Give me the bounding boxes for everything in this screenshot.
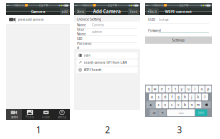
staticText: 3 xyxy=(177,124,182,136)
button[interactable]: press add camera xyxy=(6,15,70,24)
staticText: h xyxy=(184,95,186,99)
button[interactable]: d xyxy=(162,93,168,100)
staticText: f xyxy=(171,95,172,99)
button[interactable]: t xyxy=(172,86,178,92)
button[interactable]: Photo xyxy=(22,109,38,120)
staticText: Photo xyxy=(25,116,34,119)
button[interactable]: i xyxy=(192,86,198,92)
button[interactable]: h xyxy=(182,93,188,100)
button[interactable]: p xyxy=(205,86,211,92)
staticText: Join xyxy=(198,111,204,114)
button[interactable]: Search camera (IP) from LAN xyxy=(76,59,137,66)
button[interactable]: v xyxy=(175,101,181,108)
button[interactable]: l xyxy=(202,93,208,100)
button[interactable]: Back xyxy=(146,8,159,14)
staticText: WIFI Search xyxy=(83,68,101,72)
button[interactable]: m xyxy=(195,101,201,108)
button[interactable]: Save xyxy=(128,8,139,14)
staticText: s xyxy=(158,95,160,99)
staticText: Done xyxy=(76,9,84,14)
staticText: r xyxy=(168,87,169,91)
staticText: 3:52 PM xyxy=(39,4,48,7)
button[interactable]: WIFI Search xyxy=(76,67,137,73)
button[interactable]: add xyxy=(60,8,69,14)
staticText: q xyxy=(148,87,150,91)
button[interactable]: s xyxy=(156,93,162,100)
button[interactable]: space xyxy=(167,109,195,116)
button[interactable]: e xyxy=(159,86,165,92)
button[interactable]: o xyxy=(199,86,205,92)
button[interactable]: y xyxy=(179,86,185,92)
staticText: Scan xyxy=(83,53,90,57)
staticText: SSID xyxy=(148,18,155,22)
staticText: admin xyxy=(92,30,102,34)
staticText: T-Mobile xyxy=(13,4,24,7)
button[interactable]: Join xyxy=(195,109,207,116)
button[interactable]: c xyxy=(169,101,175,108)
staticText: 📶 xyxy=(25,4,28,7)
staticText: y xyxy=(181,87,183,91)
button[interactable]: Scan xyxy=(76,52,137,58)
staticText: Video xyxy=(42,116,50,119)
staticText: j xyxy=(191,95,192,99)
button[interactable]: Video xyxy=(38,109,54,120)
staticText: t xyxy=(175,87,176,91)
staticText: Back xyxy=(149,9,157,14)
staticText: 3:52 PM xyxy=(179,4,188,7)
staticText: k xyxy=(197,95,199,99)
staticText: camera xyxy=(10,116,17,119)
staticText: i xyxy=(194,87,195,91)
button[interactable]: ⊕ xyxy=(158,109,166,116)
staticText: x xyxy=(164,103,166,107)
staticText: z xyxy=(158,103,160,107)
button[interactable]: b xyxy=(182,101,188,108)
staticText: Password xyxy=(77,41,92,50)
staticText: Password xyxy=(148,29,161,33)
staticText: Camera xyxy=(92,23,104,27)
button[interactable]: a xyxy=(149,93,155,100)
staticText: ⊕ xyxy=(161,111,163,114)
staticText: 📶 xyxy=(93,4,96,7)
button[interactable]: f xyxy=(169,93,175,100)
button[interactable]: Settings xyxy=(145,36,212,44)
staticText: a xyxy=(151,95,153,99)
staticText: linksys xyxy=(159,18,168,22)
staticText: Add Camera xyxy=(93,8,121,15)
button[interactable]: Shift xyxy=(146,101,155,108)
button[interactable]: x xyxy=(162,101,168,108)
staticText: 123 xyxy=(152,111,155,114)
button[interactable]: n xyxy=(189,101,195,108)
button[interactable]: r xyxy=(166,86,172,92)
button[interactable]: w xyxy=(152,86,158,92)
button[interactable]: Done xyxy=(75,8,86,14)
button[interactable]: Setting xyxy=(54,109,70,120)
staticText: T-Mobile xyxy=(152,4,163,7)
staticText: T-Mobile xyxy=(81,4,92,7)
button[interactable]: u xyxy=(185,86,191,92)
staticText: m xyxy=(197,103,200,107)
staticText: 3:52 PM xyxy=(108,4,117,7)
staticText: add xyxy=(61,9,67,14)
staticText: User Name xyxy=(77,27,86,36)
staticText: u xyxy=(187,87,189,91)
button[interactable]: camera xyxy=(6,109,22,120)
staticText: Camera xyxy=(31,9,45,14)
button[interactable]: g xyxy=(175,93,181,100)
button[interactable]: z xyxy=(156,101,162,108)
staticText: g xyxy=(177,95,179,99)
button[interactable]: Delete xyxy=(202,101,211,108)
staticText: 📶 xyxy=(164,4,167,7)
staticText: WIFI connect xyxy=(165,9,192,14)
button[interactable]: 123 xyxy=(150,109,158,116)
staticText: 1 xyxy=(36,124,41,136)
staticText: Save xyxy=(129,9,137,14)
staticText: l xyxy=(204,95,205,99)
button[interactable]: q xyxy=(146,86,152,92)
staticText: space xyxy=(178,111,183,114)
button[interactable]: j xyxy=(189,93,195,100)
staticText: p xyxy=(207,87,209,91)
button[interactable]: k xyxy=(195,93,201,100)
staticText: w xyxy=(154,87,157,91)
staticText: Settings xyxy=(172,38,185,42)
staticText: Setting xyxy=(57,116,66,119)
